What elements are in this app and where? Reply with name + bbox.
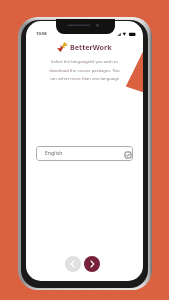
staticText: English <box>45 150 63 157</box>
staticText: BetterWork <box>70 42 112 52</box>
staticText: 10:58 <box>36 31 47 37</box>
button[interactable]: Previous <box>65 256 81 272</box>
staticText: Select the language(s) you wish to downl… <box>47 59 122 81</box>
button[interactable]: Next <box>84 256 100 272</box>
button[interactable]: English <box>36 146 133 161</box>
